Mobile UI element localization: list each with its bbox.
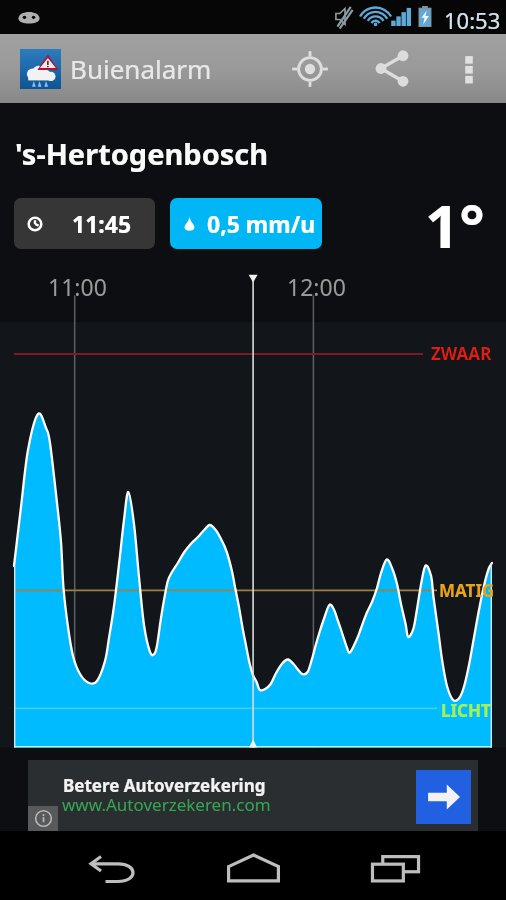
staticText: LICHT <box>441 699 491 722</box>
button[interactable]: Home <box>198 831 308 900</box>
button[interactable]: Betere Autoverzekering <box>28 760 478 831</box>
staticText: 's-Hertogenbosch <box>15 134 269 173</box>
staticText: 11:45 <box>72 208 132 239</box>
button[interactable]: Open advertisement <box>416 770 471 824</box>
button[interactable]: Locate <box>271 34 349 103</box>
button[interactable]: Share <box>349 34 436 103</box>
staticText: 0,5 mm/u <box>207 208 316 239</box>
staticText: Buienalarm <box>70 51 212 86</box>
button[interactable]: 11:45 <box>14 198 155 249</box>
button[interactable]: 0,5 mm/u <box>170 198 322 249</box>
button[interactable]: Back <box>58 831 168 900</box>
button[interactable]: More options <box>436 34 501 103</box>
staticText: 11:00 <box>48 271 107 302</box>
staticText: 10:53 <box>444 5 501 35</box>
staticText: MATIG <box>439 579 495 602</box>
staticText: Betere Autoverzekering <box>63 774 266 797</box>
staticText: 12:00 <box>287 271 346 302</box>
button[interactable]: Recent apps <box>340 831 450 900</box>
staticText: 1° <box>425 184 485 266</box>
staticText: ZWAAR <box>431 342 492 365</box>
staticText: www.Autoverzekeren.com <box>62 793 271 816</box>
